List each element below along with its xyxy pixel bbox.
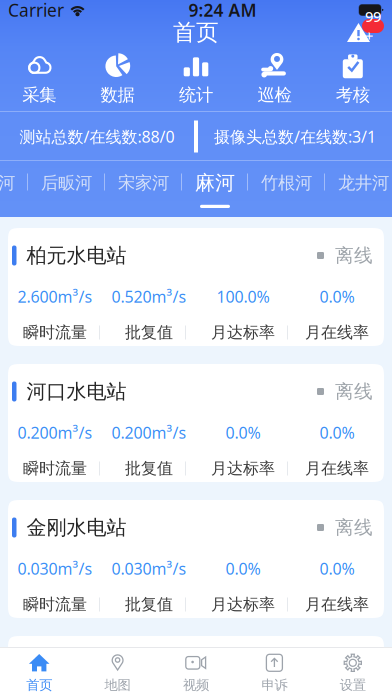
staticText: 河口水电站 [26, 379, 126, 404]
staticText: 地图 [105, 677, 131, 693]
staticText: 黄龙水电站 [26, 651, 126, 676]
button[interactable]: 统计 [157, 51, 235, 106]
staticText: 后畈河 [41, 172, 92, 194]
staticText: 离线 [335, 516, 373, 539]
button[interactable]: 后畈河 [28, 161, 105, 217]
staticText: 9:24 AM [188, 0, 256, 21]
staticText: Carrier [8, 0, 64, 21]
staticText: 设置 [340, 677, 366, 693]
staticText: 麻河 [195, 171, 235, 195]
staticText: 金刚水电站 [26, 515, 126, 540]
staticText: 瞬时流量 [23, 595, 87, 614]
staticText: 首页 [173, 19, 219, 46]
staticText: 洋河 [0, 172, 15, 194]
staticText: 批复值 [125, 459, 173, 478]
staticText: 视频 [183, 677, 209, 693]
staticText: 考核 [336, 84, 370, 106]
staticText: 0.030m³/s [17, 558, 92, 579]
staticText: 月在线率 [305, 459, 369, 478]
button[interactable]: 金刚水电站 [8, 500, 384, 618]
button[interactable]: 洋河 [0, 161, 28, 217]
button[interactable]: 视频 [157, 651, 235, 693]
staticText: 摄像头总数/在线数:3/1 [214, 126, 376, 147]
staticText: 0.0% [319, 558, 354, 579]
staticText: 采集 [22, 84, 56, 106]
button[interactable]: Alerts [346, 21, 392, 44]
staticText: 统计 [179, 84, 213, 106]
staticText: 0.0% [225, 422, 260, 443]
staticText: 瞬时流量 [23, 323, 87, 342]
staticText: 测站总数/在线数:88/0 [19, 126, 174, 147]
staticText: 龙井河 [338, 172, 389, 194]
staticText: 月达标率 [211, 595, 275, 614]
staticText: 离线 [335, 244, 373, 267]
button[interactable]: 数据 [78, 51, 157, 106]
staticText: 0.030m³/s [111, 558, 186, 579]
staticText: 竹根河 [261, 172, 312, 194]
button[interactable]: 宋家河 [105, 161, 182, 217]
staticText: 月达标率 [211, 459, 275, 478]
staticText: 申诉 [261, 677, 287, 693]
button[interactable]: 地图 [78, 651, 157, 693]
staticText: 0.200m³/s [17, 422, 92, 443]
button[interactable]: 首页 [0, 651, 78, 693]
button[interactable]: 麻河 [182, 161, 248, 217]
staticText: 2.600m³/s [17, 286, 92, 307]
button[interactable]: 申诉 [235, 651, 314, 693]
staticText: 批复值 [125, 323, 173, 342]
staticText: 宋家河 [118, 172, 169, 194]
staticText: 瞬时流量 [23, 459, 87, 478]
button[interactable]: 巡检 [235, 51, 314, 106]
button[interactable]: 柏元水电站 [8, 228, 384, 346]
staticText: 批复值 [125, 595, 173, 614]
staticText: 月达标率 [211, 323, 275, 342]
staticText: 首页 [26, 677, 52, 693]
staticText: 月在线率 [305, 323, 369, 342]
staticText: 离线 [335, 380, 373, 403]
button[interactable]: 设置 [314, 651, 392, 693]
button[interactable]: 采集 [0, 51, 78, 106]
staticText: 柏元水电站 [26, 243, 126, 268]
staticText: 巡检 [257, 84, 291, 106]
staticText: 0.0% [319, 422, 354, 443]
button[interactable]: 考核 [314, 51, 392, 106]
staticText: 0.200m³/s [111, 422, 186, 443]
staticText: 离线 [335, 652, 373, 675]
button[interactable]: 河口水电站 [8, 364, 384, 482]
staticText: 100.0% [216, 286, 269, 307]
button[interactable]: 黄龙水电站 [8, 636, 384, 696]
staticText: 月在线率 [305, 595, 369, 614]
button[interactable]: 龙井河 [325, 161, 392, 217]
staticText: 0.0% [225, 558, 260, 579]
staticText: 0.0% [319, 286, 354, 307]
staticText: 数据 [101, 84, 135, 106]
staticText: 0.520m³/s [111, 286, 186, 307]
button[interactable]: 竹根河 [248, 161, 325, 217]
staticText: 99+ [365, 6, 381, 45]
